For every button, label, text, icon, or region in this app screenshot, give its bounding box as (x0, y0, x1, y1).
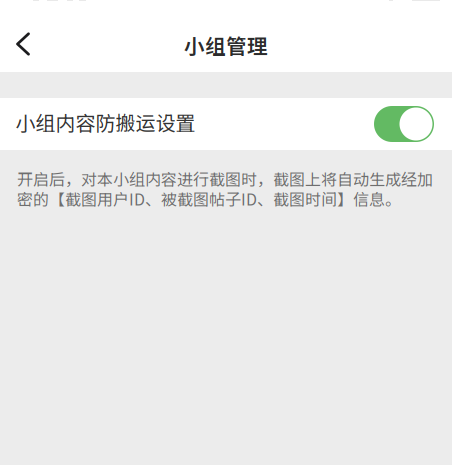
staticText: 小组内容防搬运设置 (15, 107, 195, 136)
staticText: 小组管理 (184, 30, 268, 60)
staticText: 开启后，对本小组内容进行截图时，截图上将自动生成经加密的【截图用户ID、被截图帖… (17, 167, 433, 210)
button[interactable]: Back (0, 18, 44, 66)
button[interactable]: 小组内容防搬运设置 (0, 98, 452, 150)
